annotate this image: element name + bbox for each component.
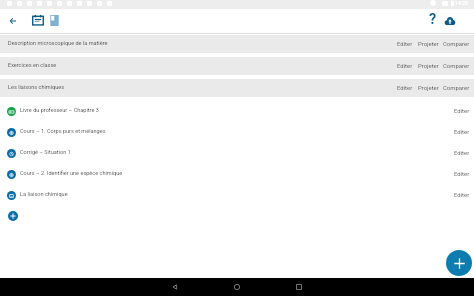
button[interactable]: Comparer [442,61,471,72]
button[interactable]: Les liaisons chimiques [0,79,474,97]
button[interactable]: Editer [453,106,471,117]
button[interactable]: Projeter [417,61,440,72]
button[interactable]: Editer [396,61,414,72]
staticText: La liaison chimique [20,191,68,198]
button[interactable]: Applications récentes [290,278,308,296]
button[interactable]: Cours – 2. Identifier une espèce chimiqu… [0,164,474,185]
staticText: Corrigé – Situation 1 [20,149,71,156]
staticText: 14:28 [455,0,468,6]
button[interactable]: Livre du professeur – Chapitre 3 [0,101,474,122]
staticText: Editer [397,84,413,91]
staticText: Editer [454,128,470,135]
button[interactable]: Projeter [417,83,440,94]
button[interactable]: Cours – 1. Corps purs et mélanges [0,122,474,143]
button[interactable]: La liaison chimique [0,185,474,206]
button[interactable]: Accueil [228,278,246,296]
staticText: Comparer [443,40,470,47]
staticText: Projeter [418,62,439,69]
staticText: ? [429,11,437,28]
button[interactable]: Comparer [442,39,471,50]
staticText: Projeter [418,84,439,91]
staticText: Projeter [418,40,439,47]
staticText: Editer [454,149,470,156]
staticText: Comparer [443,84,470,91]
staticText: Comparer [443,62,470,69]
staticText: Cours – 1. Corps purs et mélanges [20,128,106,135]
button[interactable]: Ajouter un document [8,211,18,221]
button[interactable]: Editer [453,127,471,138]
button[interactable]: Synchroniser [441,12,459,30]
staticText: Editer [397,40,413,47]
staticText: Livre du professeur – Chapitre 3 [20,107,99,114]
button[interactable]: Exercices en classe [0,57,474,75]
button[interactable]: Projeter [417,39,440,50]
button[interactable]: Description microscopique de la matière [0,35,474,53]
button[interactable]: Ajouter [446,250,472,276]
button[interactable]: Aide [424,11,441,28]
button[interactable]: Manuel [46,12,62,28]
button[interactable]: Agenda [29,12,47,30]
staticText: Exercices en classe [8,62,57,69]
staticText: Editer [454,191,470,198]
button[interactable]: Editer [396,83,414,94]
button[interactable]: Editer [453,190,471,201]
staticText: Editer [454,107,470,114]
button[interactable]: Comparer [442,83,471,94]
button[interactable]: Editer [396,39,414,50]
button[interactable]: Editer [453,148,471,159]
staticText: Les liaisons chimiques [8,84,65,91]
staticText: Editer [454,170,470,177]
staticText: Cours – 2. Identifier une espèce chimiqu… [20,170,123,177]
button[interactable]: Retour [166,278,184,296]
staticText: Editer [397,62,413,69]
button[interactable]: Editer [453,169,471,180]
button[interactable]: Corrigé – Situation 1 [0,143,474,164]
staticText: Description microscopique de la matière [8,40,108,47]
button[interactable]: Retour [5,13,21,29]
